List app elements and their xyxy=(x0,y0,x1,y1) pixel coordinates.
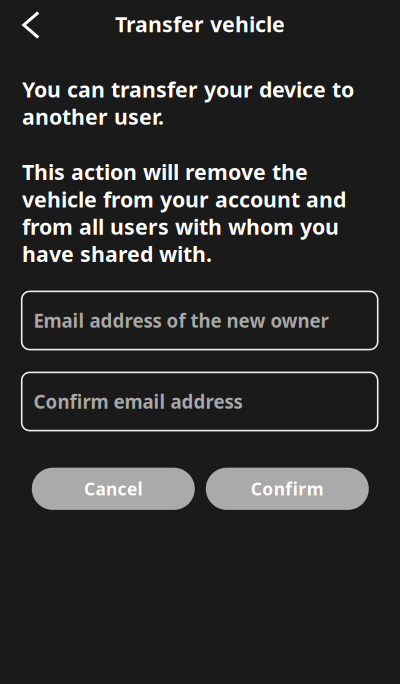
button[interactable]: Back xyxy=(9,3,53,47)
staticText: This action will remove the vehicle from… xyxy=(22,158,346,268)
button[interactable]: Cancel xyxy=(32,468,195,510)
button[interactable]: Confirm xyxy=(206,468,369,510)
staticText: Cancel xyxy=(84,477,142,500)
button[interactable]: Confirm email address xyxy=(22,372,378,431)
staticText: Email address of the new owner xyxy=(33,308,328,333)
staticText: Confirm email address xyxy=(33,389,242,414)
staticText: You can transfer your device to another … xyxy=(22,75,354,131)
staticText: Confirm xyxy=(251,477,324,500)
staticText: Transfer vehicle xyxy=(115,10,285,38)
button[interactable]: Email address of the new owner xyxy=(22,291,378,350)
